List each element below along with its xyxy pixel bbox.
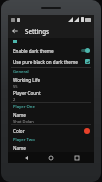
staticText: General bbox=[13, 69, 29, 75]
staticText: Player Two bbox=[13, 137, 35, 143]
button[interactable]: Player Count bbox=[8, 89, 94, 102]
staticText: Player One bbox=[13, 104, 35, 110]
staticText: Name bbox=[13, 112, 26, 118]
staticText: 2 bbox=[13, 97, 16, 102]
button[interactable]: Working Life bbox=[8, 76, 94, 89]
button[interactable]: Color bbox=[8, 125, 94, 136]
button[interactable]: Enable dark theme bbox=[8, 45, 94, 56]
staticText: Use pure black on dark theme bbox=[13, 59, 78, 65]
button[interactable]: Recent apps bbox=[69, 152, 85, 163]
staticText: Shot Dolan bbox=[13, 119, 34, 124]
button[interactable]: Name bbox=[8, 144, 94, 152]
staticText: Settings bbox=[25, 27, 50, 35]
staticText: Enable dark theme bbox=[13, 48, 54, 54]
staticText: Player Count bbox=[13, 90, 41, 96]
button[interactable]: Use pure black on dark theme bbox=[8, 56, 94, 67]
button[interactable]: Navigate up bbox=[8, 24, 22, 38]
button[interactable]: Home bbox=[43, 152, 59, 163]
staticText: Working Life bbox=[13, 77, 41, 83]
staticText: 55 bbox=[13, 84, 18, 89]
button[interactable]: Name bbox=[8, 111, 94, 124]
staticText: Color bbox=[13, 128, 25, 134]
staticText: Name bbox=[13, 145, 26, 151]
button[interactable]: Back bbox=[18, 152, 34, 163]
